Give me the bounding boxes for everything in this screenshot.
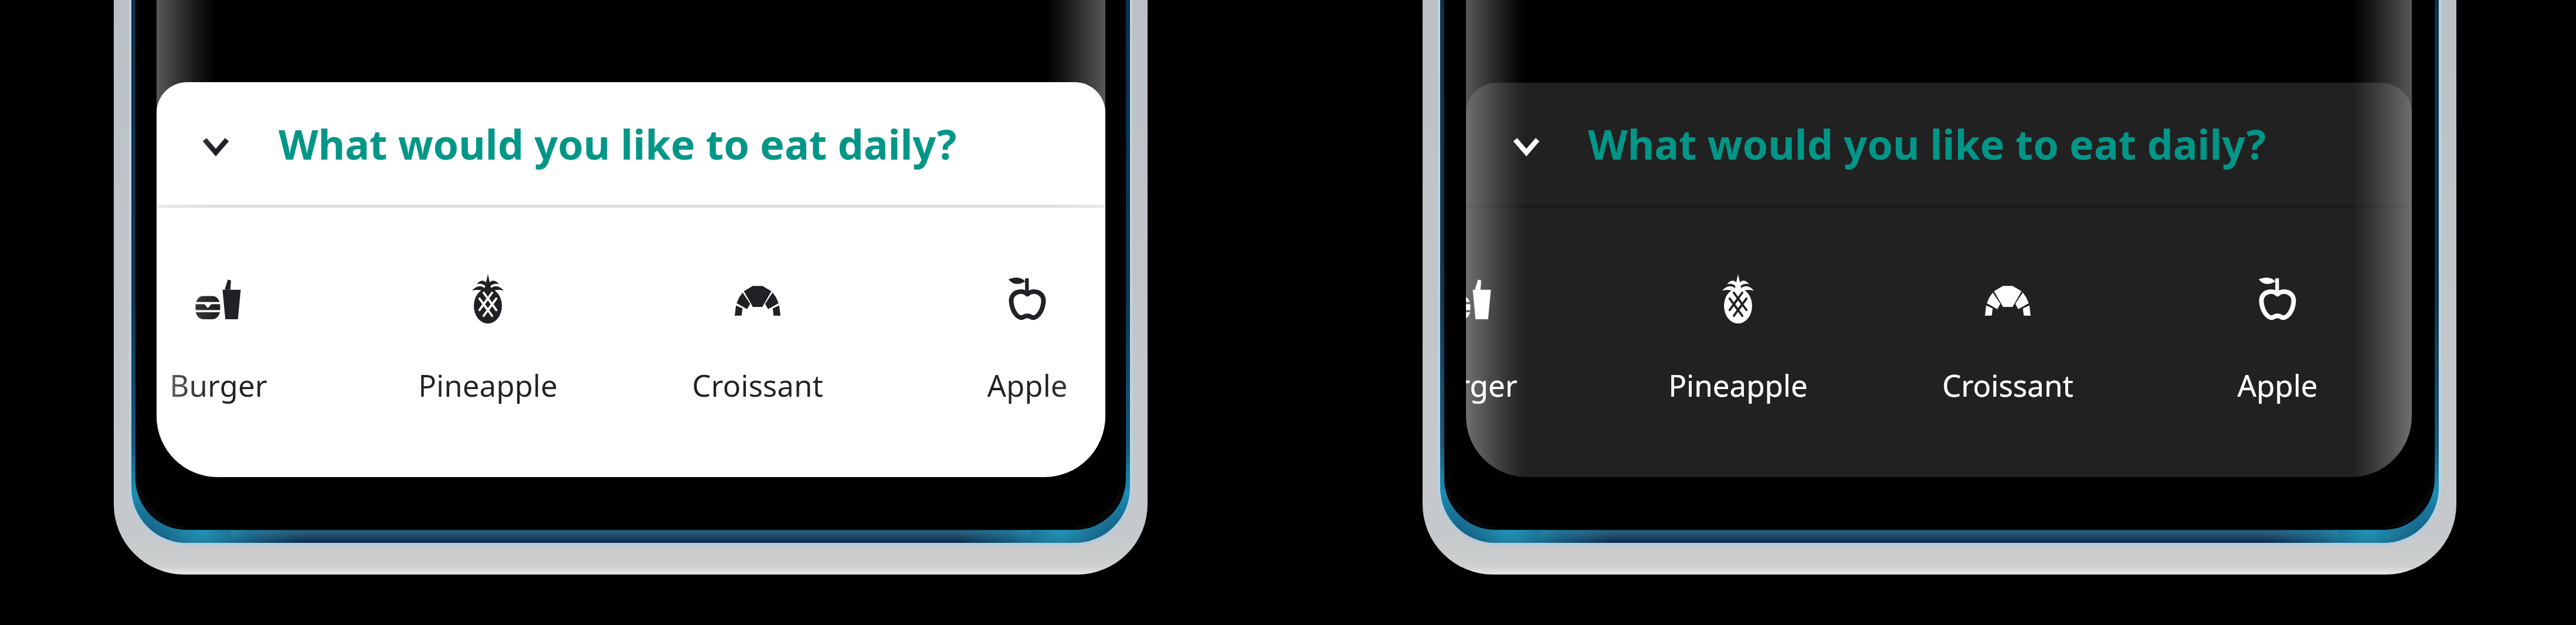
button[interactable]: Croissant [1891,258,2125,417]
staticText: Pineapple [418,364,558,405]
staticText: Croissant [1942,364,2073,405]
button[interactable]: Burger [1466,258,1586,417]
button[interactable]: Collapse [185,116,246,177]
button[interactable]: Burger [157,258,335,417]
staticText: What would you like to eat daily? [279,116,957,171]
staticText: What would you like to eat daily? [1588,116,2266,171]
button[interactable]: Pineapple [371,258,605,417]
staticText: Burger [1466,364,1518,405]
staticText: Croissant [692,364,823,405]
button[interactable]: Apple [2160,258,2395,417]
button[interactable]: Croissant [640,258,875,417]
staticText: Apple [987,364,1068,405]
button[interactable]: Collapse [1496,116,1557,177]
button[interactable]: Apple [910,258,1105,417]
button[interactable]: Collapse [1466,83,2412,205]
staticText: Burger [169,364,267,405]
staticText: Apple [2237,364,2318,405]
button[interactable]: Pineapple [1621,258,1855,417]
staticText: Pineapple [1668,364,1808,405]
button[interactable]: Collapse [157,82,1105,205]
